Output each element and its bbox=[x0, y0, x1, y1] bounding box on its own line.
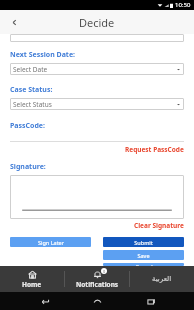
button[interactable]: Request PassCode bbox=[125, 145, 184, 154]
staticText: Sign Later bbox=[38, 239, 64, 246]
staticText: Submit bbox=[134, 239, 153, 246]
button[interactable]: Select Status bbox=[10, 98, 184, 110]
staticText: Clear Signature bbox=[134, 221, 184, 230]
button[interactable]: Back bbox=[6, 14, 22, 30]
staticText: Cancel bbox=[135, 263, 153, 266]
staticText: Select Date bbox=[13, 65, 48, 74]
button[interactable]: العربية bbox=[130, 266, 194, 292]
staticText: PassCode: bbox=[10, 121, 46, 131]
button[interactable]: Select Date bbox=[10, 63, 184, 75]
staticText: Case Status: bbox=[10, 85, 53, 95]
button[interactable]: 0 bbox=[65, 266, 129, 292]
staticText: Save bbox=[137, 252, 150, 259]
staticText: 0 bbox=[103, 269, 106, 274]
staticText: Decide bbox=[79, 15, 115, 30]
staticText: Next Session Date: bbox=[10, 50, 76, 60]
staticText: Select Status bbox=[13, 100, 52, 109]
staticText: 10:50 bbox=[175, 1, 191, 9]
button[interactable]: Sign Later bbox=[10, 237, 91, 247]
button[interactable]: Clear Signature bbox=[134, 221, 184, 230]
button[interactable]: Home bbox=[87, 292, 107, 310]
staticText: Notifications bbox=[76, 280, 119, 289]
button[interactable]: Submit bbox=[103, 237, 184, 247]
staticText: Home bbox=[22, 280, 42, 289]
button[interactable]: Recent apps bbox=[141, 292, 161, 310]
staticText: Signature: bbox=[10, 162, 46, 172]
button[interactable]: Home bbox=[0, 266, 64, 292]
button[interactable]: Signature pad bbox=[10, 175, 184, 219]
button[interactable]: Back bbox=[34, 292, 54, 310]
staticText: Request PassCode bbox=[125, 145, 184, 154]
button[interactable]: Cancel bbox=[103, 263, 184, 266]
staticText: العربية bbox=[152, 275, 172, 283]
button[interactable]: Save bbox=[103, 250, 184, 260]
